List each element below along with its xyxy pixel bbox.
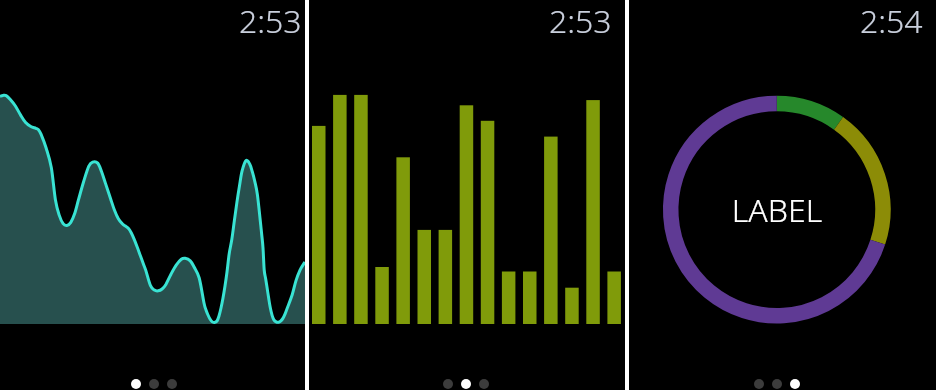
button[interactable]: Progress ring screen xyxy=(629,0,936,390)
button[interactable]: Go to page 2 xyxy=(772,379,782,389)
button[interactable]: Go to page 1 xyxy=(754,379,764,389)
staticText: LABEL xyxy=(707,188,847,232)
button[interactable]: Go to page 3 xyxy=(790,379,800,389)
button[interactable]: Go to page 3 xyxy=(479,379,489,389)
button[interactable]: Go to page 2 xyxy=(461,379,471,389)
button[interactable]: Bar chart screen xyxy=(309,0,625,390)
staticText: 2:53 xyxy=(549,0,612,43)
staticText: 2:53 xyxy=(239,0,302,43)
button[interactable]: Go to page 2 xyxy=(149,379,159,389)
staticText: 2:54 xyxy=(860,0,923,43)
button[interactable]: Go to page 1 xyxy=(131,379,141,389)
button[interactable]: Line chart screen xyxy=(0,0,305,390)
button[interactable]: Go to page 1 xyxy=(443,379,453,389)
button[interactable]: Go to page 3 xyxy=(167,379,177,389)
